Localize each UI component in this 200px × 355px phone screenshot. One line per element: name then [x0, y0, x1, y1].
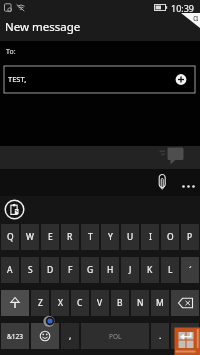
staticText: F — [68, 264, 73, 276]
button[interactable]: F — [61, 257, 79, 283]
button[interactable]: X — [51, 290, 69, 316]
button[interactable]: U — [121, 224, 139, 250]
button[interactable]: J — [121, 257, 139, 283]
staticText: Y — [108, 231, 113, 243]
button[interactable] — [171, 290, 199, 316]
button[interactable]: H — [101, 257, 119, 283]
button[interactable] — [4, 199, 25, 220]
button[interactable]: C — [71, 290, 89, 316]
staticText: J — [129, 264, 132, 276]
staticText: I — [149, 231, 152, 243]
button[interactable]: M — [151, 290, 169, 316]
button[interactable]: A — [1, 257, 19, 283]
staticText: N — [137, 297, 144, 309]
staticText: , — [69, 330, 72, 342]
staticText: B — [117, 297, 123, 309]
button[interactable]: S — [21, 257, 39, 283]
button[interactable]: O — [161, 224, 179, 250]
button[interactable]: W — [21, 224, 39, 250]
button[interactable] — [178, 178, 198, 194]
staticText: &123 — [7, 332, 23, 341]
staticText: V — [97, 297, 103, 309]
button[interactable]: K — [141, 257, 159, 283]
button[interactable]: D — [41, 257, 59, 283]
staticText: TEST, — [8, 74, 27, 84]
staticText: M — [156, 297, 164, 309]
staticText: ´ — [189, 264, 192, 276]
button[interactable]: T — [81, 224, 99, 250]
button[interactable]: &123 — [1, 323, 29, 349]
button[interactable]: Y — [101, 224, 119, 250]
staticText: A — [7, 264, 13, 276]
button[interactable] — [173, 71, 189, 87]
button[interactable]: N — [131, 290, 149, 316]
staticText: . — [159, 330, 162, 342]
staticText: E — [48, 231, 53, 243]
staticText: To: — [6, 47, 16, 57]
button[interactable]: , — [61, 323, 79, 349]
staticText: W — [26, 231, 34, 243]
button[interactable] — [31, 323, 59, 349]
button[interactable]: POL — [81, 323, 149, 349]
staticText: G — [87, 264, 94, 276]
button[interactable] — [171, 323, 199, 349]
staticText: D — [47, 264, 54, 276]
button[interactable] — [152, 170, 172, 195]
staticText: U — [127, 231, 134, 243]
staticText: P — [187, 231, 193, 243]
staticText: S — [28, 264, 33, 276]
staticText: Z — [38, 297, 43, 309]
staticText: α — [193, 12, 199, 24]
button[interactable] — [1, 290, 29, 316]
button[interactable]: B — [111, 290, 129, 316]
button[interactable]: E — [41, 224, 59, 250]
staticText: R — [67, 231, 73, 243]
button[interactable]: . — [151, 323, 169, 349]
button[interactable]: V — [91, 290, 109, 316]
staticText: Q — [7, 231, 14, 243]
staticText: C — [77, 297, 83, 309]
button[interactable]: TEST, — [4, 66, 195, 93]
staticText: 10:39 — [171, 2, 195, 14]
staticText: X — [58, 297, 63, 309]
button[interactable]: ´ — [181, 257, 199, 283]
button[interactable]: P — [181, 224, 199, 250]
button[interactable]: I — [141, 224, 159, 250]
button[interactable]: Z — [31, 290, 49, 316]
staticText: K — [147, 264, 153, 276]
staticText: L — [168, 264, 173, 276]
button[interactable]: Q — [1, 224, 19, 250]
staticText: POL — [109, 332, 122, 341]
staticText: O — [167, 231, 174, 243]
button[interactable]: R — [61, 224, 79, 250]
staticText: New message — [5, 19, 81, 35]
staticText: T — [88, 231, 93, 243]
staticText: H — [107, 264, 114, 276]
button[interactable]: L — [161, 257, 179, 283]
button[interactable] — [0, 146, 200, 169]
button[interactable]: G — [81, 257, 99, 283]
